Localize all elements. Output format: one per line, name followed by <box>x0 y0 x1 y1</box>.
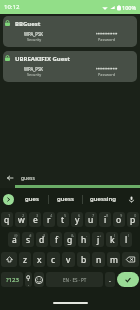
staticText: 8 <box>106 213 109 218</box>
button[interactable]: Comma <box>25 272 32 287</box>
button[interactable]: l <box>120 232 132 247</box>
staticText: guess <box>21 175 35 182</box>
staticText: o <box>116 214 122 226</box>
staticText: i <box>104 214 107 226</box>
staticText: s <box>26 234 31 246</box>
staticText: p <box>130 214 136 226</box>
button[interactable]: s <box>22 232 34 247</box>
button[interactable]: r <box>43 212 55 227</box>
staticText: + <box>99 233 102 238</box>
staticText: r <box>47 214 51 226</box>
button[interactable]: c <box>47 252 60 267</box>
staticText: 100% <box>122 4 137 11</box>
staticText: Security <box>27 37 42 42</box>
button[interactable]: i <box>99 212 111 227</box>
staticText: t <box>61 214 65 226</box>
button[interactable]: y <box>71 212 83 227</box>
staticText: guess <box>57 195 74 203</box>
staticText: e <box>33 214 38 226</box>
button[interactable]: v <box>62 252 75 267</box>
button[interactable]: k <box>106 232 118 247</box>
button[interactable]: Symbols <box>1 272 23 287</box>
staticText: 5 <box>64 213 67 218</box>
staticText: a <box>12 234 17 246</box>
staticText: n <box>96 254 102 266</box>
staticText: gues <box>25 195 39 203</box>
staticText: & <box>71 233 74 238</box>
staticText: z <box>23 254 27 266</box>
staticText: ?123 <box>6 276 19 284</box>
staticText: ••••••••••••• <box>96 66 118 72</box>
staticText: 10:12 <box>4 3 20 11</box>
staticText: ••••••••••••• <box>96 31 118 37</box>
staticText: g <box>67 234 73 246</box>
staticText: # <box>29 233 32 238</box>
button[interactable]: b <box>77 252 90 267</box>
button[interactable]: guessing <box>83 188 122 210</box>
button[interactable]: u <box>85 212 97 227</box>
button[interactable]: Period <box>105 272 115 287</box>
button[interactable]: Space <box>46 272 103 287</box>
button[interactable]: q <box>1 212 13 227</box>
button[interactable]: p <box>127 212 139 227</box>
staticText: Password <box>98 72 116 77</box>
staticText: EN · ES · PT <box>63 277 87 283</box>
staticText: ) <box>128 233 130 238</box>
staticText: 6 <box>78 213 81 218</box>
button[interactable]: m <box>107 252 120 267</box>
button[interactable]: Backspace <box>122 252 139 267</box>
staticText: m <box>110 254 118 266</box>
staticText: Security <box>27 72 42 77</box>
button[interactable]: Back <box>0 170 20 186</box>
staticText: q <box>4 214 10 226</box>
staticText: WPA_PSK <box>24 31 44 37</box>
button[interactable]: d <box>36 232 48 247</box>
button[interactable]: Voice input <box>122 188 140 210</box>
staticText: j <box>97 234 100 246</box>
staticText: y <box>75 214 80 226</box>
button[interactable]: Show suggestions <box>0 188 16 210</box>
button[interactable]: n <box>92 252 105 267</box>
button[interactable]: f <box>50 232 62 247</box>
button[interactable]: w <box>15 212 27 227</box>
button[interactable]: UBREAKIFIX Guest <box>3 51 137 82</box>
button[interactable]: Shift <box>1 252 17 267</box>
staticText: d <box>39 234 45 246</box>
staticText: ( <box>114 233 116 238</box>
button[interactable]: o <box>113 212 125 227</box>
staticText: 7 <box>92 213 95 218</box>
button[interactable]: gues <box>16 188 48 210</box>
staticText: _ <box>58 233 60 238</box>
button[interactable]: t <box>57 212 69 227</box>
staticText: k <box>110 234 115 246</box>
staticText: c <box>51 254 56 266</box>
staticText: UBREAKIFIX Guest <box>15 55 70 63</box>
staticText: l <box>125 234 128 246</box>
button[interactable]: e <box>29 212 41 227</box>
staticText: 9 <box>120 213 123 218</box>
staticText: 1 <box>8 213 11 218</box>
staticText: f <box>55 234 58 246</box>
button[interactable]: guess <box>49 188 82 210</box>
staticText: Password <box>98 37 116 42</box>
button[interactable]: j <box>92 232 104 247</box>
staticText: guessing <box>90 195 116 203</box>
staticText: BBGuest <box>15 20 41 28</box>
staticText: w <box>18 214 25 226</box>
button[interactable]: BBGuest <box>3 16 137 47</box>
staticText: 3 <box>36 213 39 218</box>
staticText: 0 <box>134 213 137 218</box>
button[interactable]: a <box>8 232 20 247</box>
staticText: b <box>81 254 87 266</box>
staticText: x <box>37 254 42 266</box>
button[interactable]: z <box>19 252 31 267</box>
button[interactable]: h <box>78 232 90 247</box>
staticText: u <box>88 214 94 226</box>
button[interactable]: Enter <box>117 272 139 287</box>
button[interactable]: Emoji <box>34 272 44 287</box>
button[interactable]: x <box>33 252 45 267</box>
staticText: - <box>86 233 88 238</box>
button[interactable]: g <box>64 232 76 247</box>
staticText: $ <box>43 233 46 238</box>
staticText: h <box>81 234 87 246</box>
